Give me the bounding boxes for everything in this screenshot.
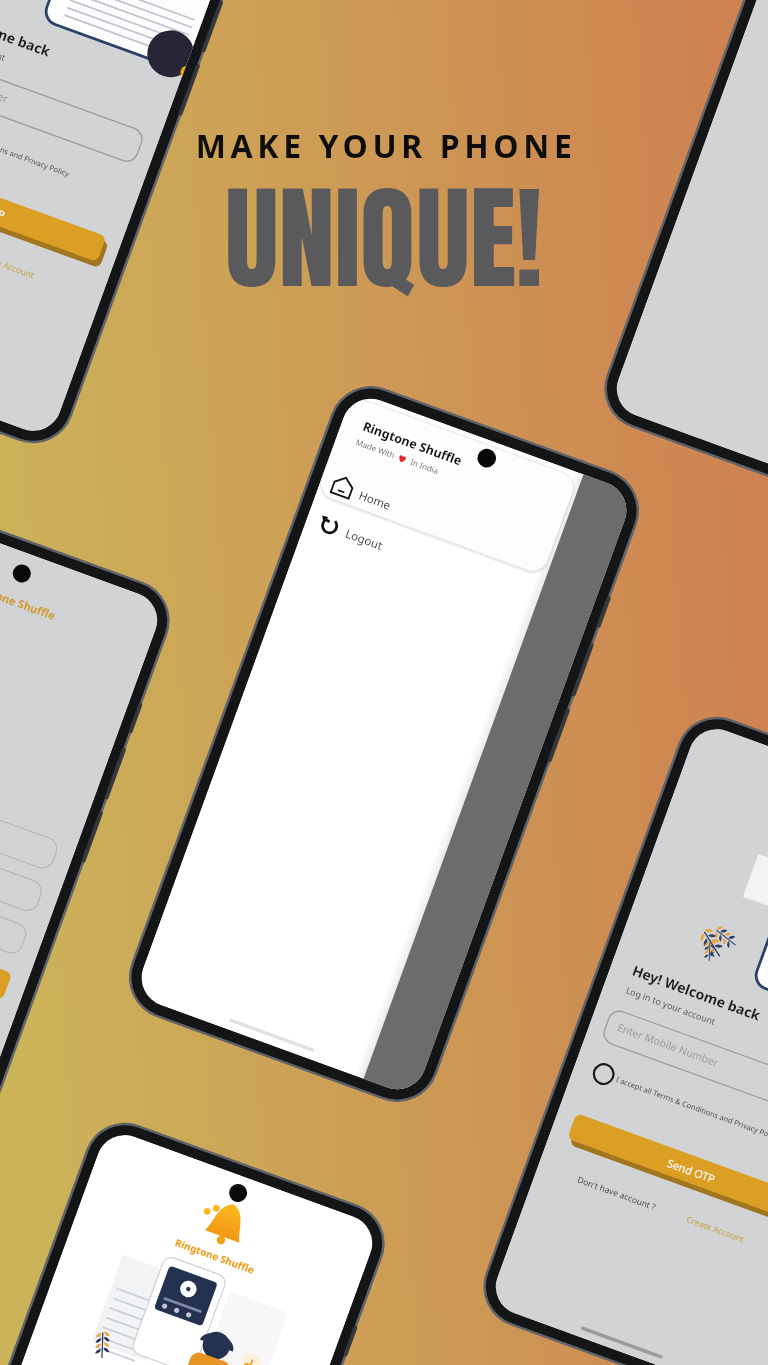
button[interactable]: Send OTP (567, 1113, 768, 1226)
button[interactable]: Home (319, 466, 557, 583)
button[interactable]: Register (0, 886, 12, 1001)
button[interactable]: Create Account (681, 1211, 768, 1274)
button[interactable]: Logout (305, 505, 543, 622)
button[interactable]: Send OTP (0, 149, 106, 262)
button[interactable]: Ringtone Shuffle, Made With love In Indi… (330, 398, 582, 553)
button[interactable]: Close navigation drawer (363, 474, 634, 1098)
